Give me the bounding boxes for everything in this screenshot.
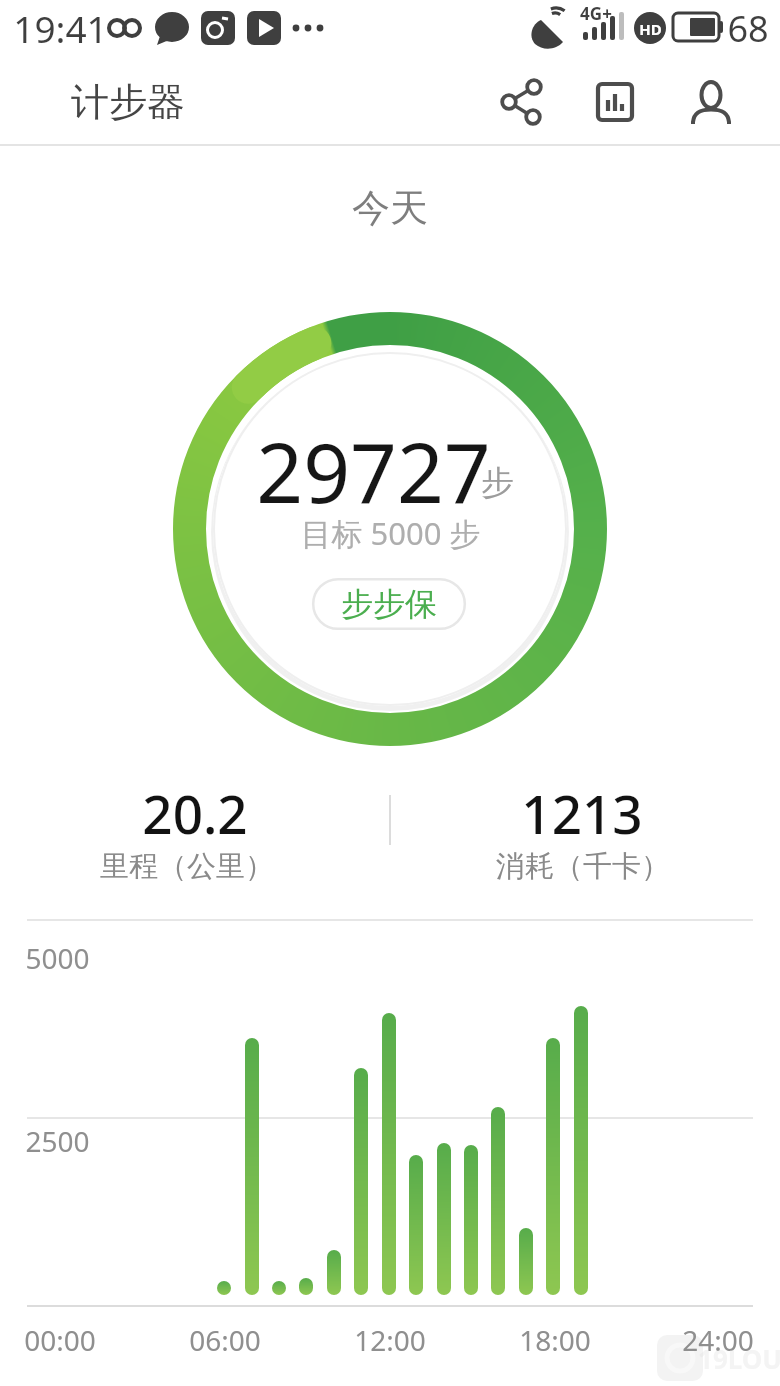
staticText: 步	[481, 462, 514, 504]
staticText: 68	[727, 4, 769, 53]
staticText: 24:00	[682, 1321, 754, 1359]
button[interactable]	[595, 82, 635, 122]
staticText: 18:00	[519, 1321, 591, 1359]
staticText: 5000	[25, 939, 90, 977]
staticText: 20.2	[142, 777, 248, 849]
staticText: 消耗（千卡）	[496, 848, 670, 885]
staticText: 12:00	[354, 1321, 426, 1359]
staticText: 计步器	[71, 78, 185, 126]
button[interactable]	[691, 82, 731, 122]
staticText: HD	[639, 19, 662, 39]
staticText: 目标 5000 步	[300, 512, 481, 554]
staticText: 4G+	[580, 2, 612, 25]
staticText: 19:41	[13, 3, 108, 53]
staticText: 里程（公里）	[100, 848, 274, 885]
staticText: 29727	[256, 415, 491, 527]
button[interactable]	[503, 82, 543, 122]
staticText: 06:00	[189, 1321, 261, 1359]
button[interactable]: 步步保	[312, 578, 466, 630]
staticText: 1213	[521, 777, 643, 849]
staticText: 今天	[352, 184, 428, 232]
staticText: 2500	[25, 1122, 90, 1160]
staticText: 00:00	[24, 1321, 96, 1359]
staticText: 19LOU	[698, 1341, 780, 1376]
staticText: 步步保	[341, 584, 437, 624]
